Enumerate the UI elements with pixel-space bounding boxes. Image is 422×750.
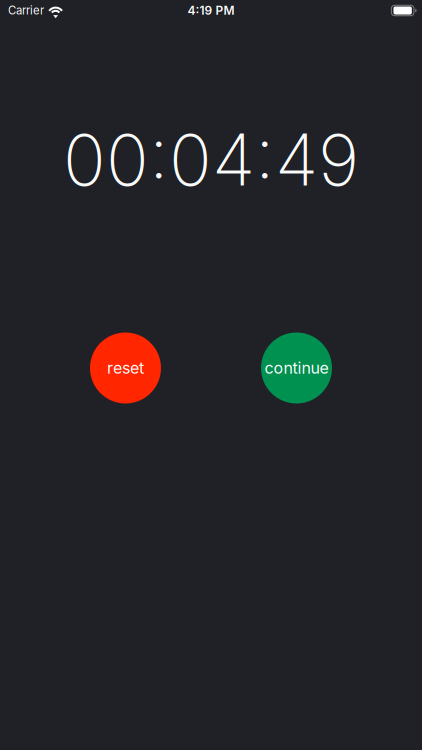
staticText: Carrier bbox=[8, 4, 44, 17]
button[interactable]: continue bbox=[261, 332, 332, 403]
staticText: 4:19 PM bbox=[187, 3, 234, 18]
staticText: 00:04:49 bbox=[63, 117, 359, 202]
staticText: continue bbox=[264, 358, 328, 378]
button[interactable]: reset bbox=[90, 332, 161, 403]
staticText: reset bbox=[107, 358, 144, 378]
